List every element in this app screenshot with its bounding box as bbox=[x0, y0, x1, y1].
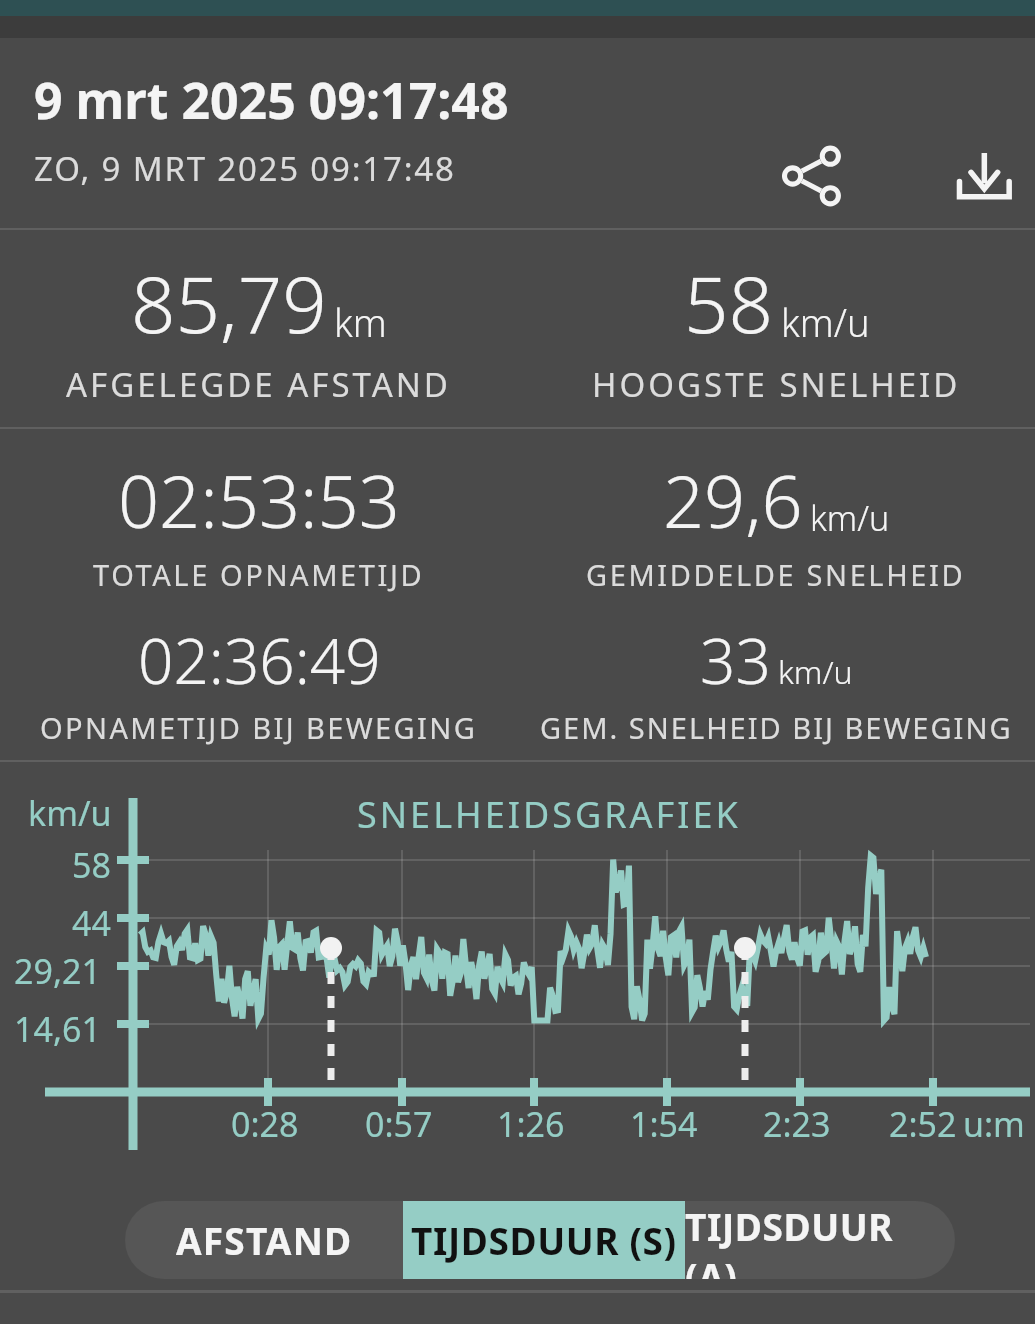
staticText: km bbox=[334, 296, 387, 348]
staticText: 2:23 bbox=[763, 1101, 831, 1147]
staticText: 58 bbox=[72, 842, 111, 888]
button[interactable]: TIJDSDUUR (S) bbox=[403, 1201, 685, 1279]
staticText: 44 bbox=[72, 900, 111, 946]
staticText: HOOGSTE SNELHEID bbox=[592, 362, 961, 407]
staticText: SNELHEIDSGRAFIEK bbox=[357, 790, 741, 839]
staticText: km/u bbox=[810, 495, 890, 541]
staticText: 1:26 bbox=[497, 1101, 565, 1147]
staticText: ZO, 9 MRT 2025 09:17:48 bbox=[34, 146, 456, 191]
staticText: 02:36:49 bbox=[138, 618, 381, 702]
staticText: OPNAMETIJD BIJ BEWEGING bbox=[40, 708, 478, 747]
staticText: 1:54 bbox=[630, 1101, 698, 1147]
staticText: 0:57 bbox=[365, 1101, 433, 1147]
staticText: km/u bbox=[28, 790, 112, 836]
staticText: AFGELEGDE AFSTAND bbox=[66, 362, 451, 407]
button[interactable]: TIJDSDUUR (A) bbox=[685, 1201, 955, 1279]
staticText: AFSTAND bbox=[176, 1215, 353, 1265]
staticText: GEM. SNELHEID BIJ BEWEGING bbox=[540, 708, 1013, 747]
button[interactable]: Share bbox=[765, 130, 857, 222]
staticText: GEMIDDELDE SNELHEID bbox=[586, 555, 966, 594]
staticText: 0:28 bbox=[231, 1101, 299, 1147]
staticText: 33 bbox=[700, 618, 771, 702]
staticText: 29,6 bbox=[663, 451, 803, 549]
staticText: 14,61 bbox=[14, 1006, 101, 1052]
staticText: 58 bbox=[684, 250, 774, 356]
staticText: TIJDSDUUR (A) bbox=[685, 1201, 955, 1279]
staticText: 9 mrt 2025 09:17:48 bbox=[34, 66, 509, 134]
staticText: km/u bbox=[778, 650, 853, 694]
staticText: km/u bbox=[781, 296, 870, 348]
staticText: 02:53:53 bbox=[118, 451, 400, 549]
staticText: TOTALE OPNAMETIJD bbox=[93, 555, 425, 594]
staticText: u:m bbox=[963, 1101, 1025, 1147]
staticText: TIJDSDUUR (S) bbox=[411, 1215, 677, 1265]
button[interactable]: Download bbox=[942, 130, 1034, 222]
staticText: 29,21 bbox=[14, 948, 101, 994]
button[interactable]: AFSTAND bbox=[125, 1201, 403, 1279]
staticText: 2:52 bbox=[889, 1101, 957, 1147]
staticText: 85,79 bbox=[131, 250, 327, 356]
